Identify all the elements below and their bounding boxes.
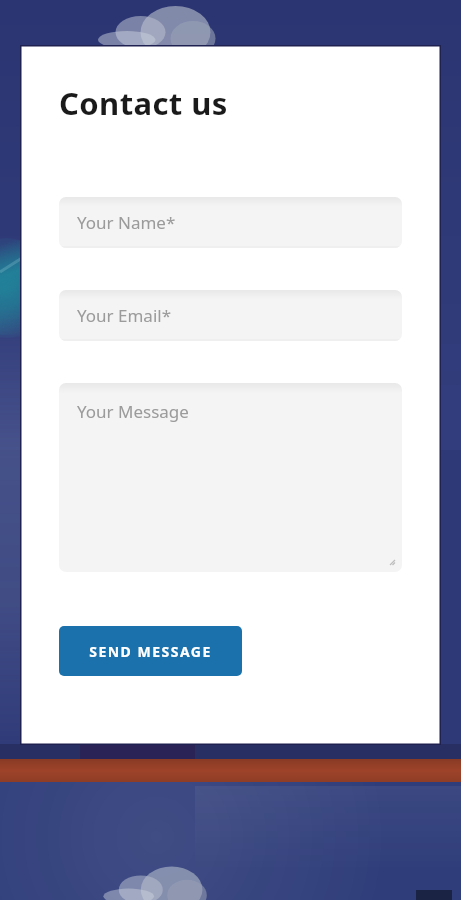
staticText: Your Name* [77,211,176,234]
button[interactable]: SEND MESSAGE [59,626,242,676]
staticText: Your Message [77,400,189,423]
staticText: Your Email* [77,304,172,327]
button[interactable]: Your Name* [59,197,402,248]
button[interactable]: Your Message [59,383,402,572]
button[interactable]: Your Email* [59,290,402,341]
staticText: SEND MESSAGE [89,642,212,661]
staticText: Contact us [59,82,228,124]
